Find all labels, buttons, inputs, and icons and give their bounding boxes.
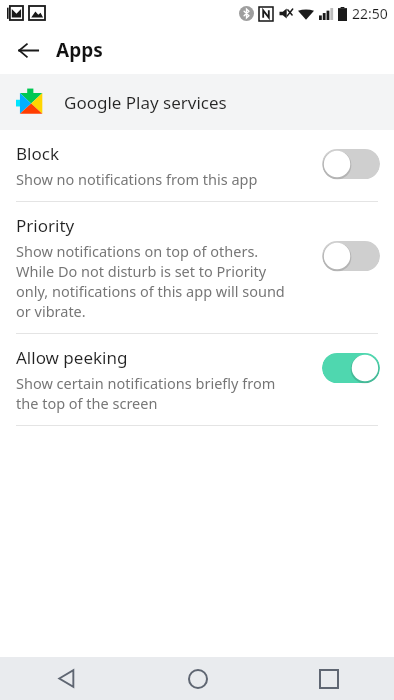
staticText: 22:50 bbox=[352, 4, 388, 23]
staticText: Google Play services bbox=[64, 91, 227, 114]
button[interactable]: Block toggle bbox=[322, 148, 380, 180]
staticText: Apps bbox=[56, 37, 103, 63]
button[interactable]: Recents bbox=[263, 657, 394, 700]
button[interactable]: Priority bbox=[0, 202, 394, 333]
button[interactable]: Block bbox=[0, 130, 394, 201]
staticText: Show certain notifications briefly from bbox=[16, 373, 276, 393]
button[interactable]: Back bbox=[8, 30, 48, 70]
staticText: only, notifications of this app will sou… bbox=[16, 281, 285, 301]
button[interactable]: Back bbox=[0, 657, 132, 700]
staticText: Priority bbox=[16, 214, 75, 237]
staticText: the top of the screen bbox=[16, 393, 158, 413]
staticText: or vibrate. bbox=[16, 301, 86, 321]
staticText: Show no notifications from this app bbox=[16, 169, 258, 189]
button[interactable]: Allow peeking toggle bbox=[322, 352, 380, 384]
staticText: While Do not disturb is set to Priority bbox=[16, 261, 267, 281]
staticText: Show notifications on top of others. bbox=[16, 241, 259, 261]
button[interactable]: Priority toggle bbox=[322, 240, 380, 272]
staticText: Allow peeking bbox=[16, 346, 128, 369]
staticText: Block bbox=[16, 142, 59, 165]
button[interactable]: Home bbox=[132, 657, 263, 700]
button[interactable]: Allow peeking bbox=[0, 334, 394, 425]
button[interactable]: Google Play services bbox=[0, 74, 394, 130]
